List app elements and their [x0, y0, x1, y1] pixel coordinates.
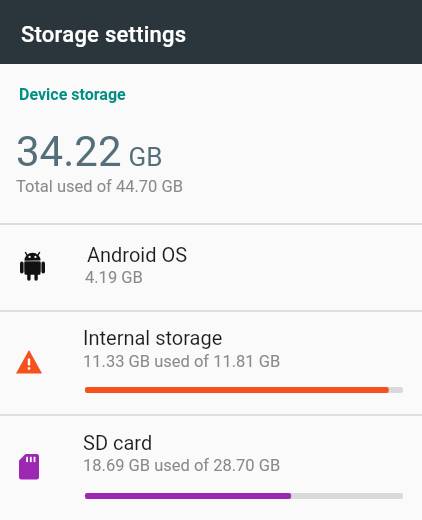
staticText: Total used of 44.70 GB — [16, 177, 183, 196]
staticText: 34.22 — [16, 127, 122, 176]
staticText: SD card — [83, 431, 153, 454]
button[interactable]: Storage settings — [0, 0, 422, 64]
staticText: 4.19 GB — [85, 268, 143, 287]
button[interactable]: Android OS — [0, 224, 422, 309]
staticText: 11.33 GB used of 11.81 GB — [83, 352, 281, 371]
staticText: Internal storage — [83, 326, 223, 349]
staticText: Android OS — [87, 243, 188, 266]
button[interactable]: Internal storage — [0, 311, 422, 413]
staticText: 18.69 GB used of 28.70 GB — [83, 456, 281, 475]
staticText: Storage settings — [21, 22, 187, 48]
button[interactable]: SD card — [0, 416, 422, 520]
staticText: Device storage — [19, 85, 126, 104]
staticText: GB — [122, 142, 163, 172]
